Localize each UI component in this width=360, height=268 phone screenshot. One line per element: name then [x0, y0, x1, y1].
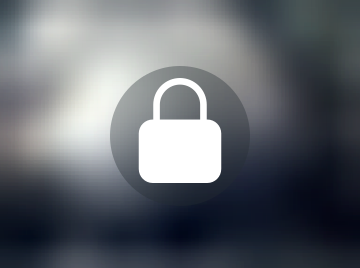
button[interactable]: Unlock: [110, 66, 250, 206]
